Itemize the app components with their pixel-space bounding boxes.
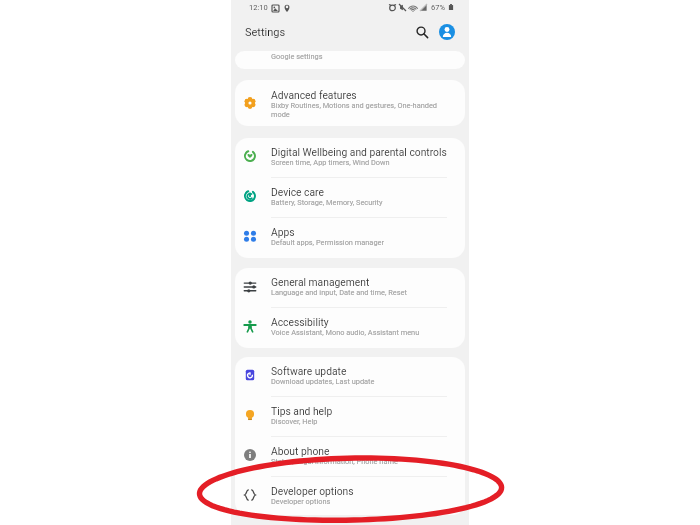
- staticText: Voice Assistant, Mono audio, Assistant m…: [271, 328, 420, 337]
- button[interactable]: Search: [413, 23, 431, 41]
- staticText: Device care: [271, 186, 324, 198]
- button[interactable]: About phone: [235, 437, 465, 477]
- staticText: 12:10: [249, 3, 268, 12]
- staticText: Developer options: [271, 497, 331, 506]
- staticText: Tips and help: [271, 405, 333, 417]
- staticText: Google settings: [271, 52, 323, 61]
- button[interactable]: Tips and help: [235, 397, 465, 437]
- staticText: Language and input, Date and time, Reset: [271, 288, 407, 297]
- staticText: General management: [271, 276, 370, 288]
- staticText: Battery, Storage, Memory, Security: [271, 198, 383, 207]
- button[interactable]: Digital Wellbeing and parental controls: [235, 138, 465, 178]
- staticText: Screen time, App timers, Wind Down: [271, 158, 390, 167]
- staticText: Accessibility: [271, 316, 329, 328]
- staticText: Bixby Routines, Motions and gestures, On…: [271, 101, 437, 119]
- staticText: Settings: [245, 26, 286, 39]
- button[interactable]: Software update: [235, 357, 465, 397]
- staticText: 67%: [431, 3, 445, 12]
- button[interactable]: Advanced features: [235, 80, 465, 120]
- staticText: Discover, Help: [271, 417, 318, 426]
- staticText: Advanced features: [271, 89, 357, 101]
- button[interactable]: Developer options: [235, 477, 465, 515]
- button[interactable]: Accessibility: [235, 308, 465, 348]
- button[interactable]: General management: [235, 268, 465, 308]
- staticText: About phone: [271, 445, 330, 457]
- staticText: Status, Legal information, Phone name: [271, 457, 398, 466]
- button[interactable]: Device care: [235, 178, 465, 218]
- button[interactable]: Apps: [235, 218, 465, 258]
- staticText: Apps: [271, 226, 295, 238]
- staticText: Download updates, Last update: [271, 377, 375, 386]
- staticText: Software update: [271, 365, 347, 377]
- staticText: Developer options: [271, 485, 354, 497]
- staticText: Default apps, Permission manager: [271, 238, 384, 247]
- button[interactable]: Account: [437, 22, 457, 42]
- staticText: Digital Wellbeing and parental controls: [271, 146, 447, 158]
